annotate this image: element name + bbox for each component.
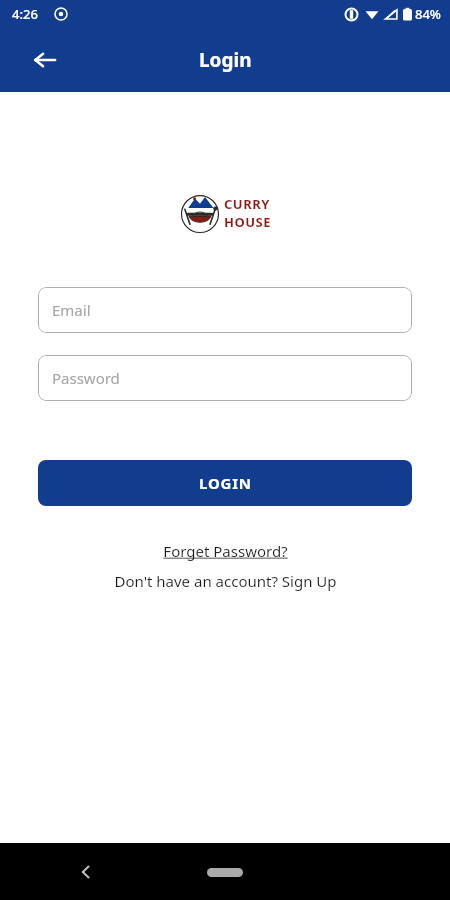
button[interactable]: Back (24, 39, 66, 81)
staticText: Don't have an account? Sign Up (114, 571, 337, 591)
staticText: Forget Password? (163, 541, 288, 561)
button[interactable]: Home (195, 859, 255, 885)
staticText: Email (52, 300, 91, 320)
staticText: Password (52, 368, 120, 388)
button[interactable]: Password (38, 355, 412, 401)
button[interactable]: Back (66, 852, 106, 892)
staticText: LOGIN (199, 473, 252, 493)
staticText: 84% (415, 5, 441, 23)
button[interactable]: Don't have an account? Sign Up (108, 569, 343, 593)
staticText: Login (199, 47, 252, 73)
staticText: CURRY (224, 195, 270, 213)
button[interactable]: Email (38, 287, 412, 333)
staticText: 4:26 (12, 5, 38, 23)
staticText: HOUSE (224, 213, 271, 229)
button[interactable]: LOGIN (38, 460, 412, 506)
button[interactable]: Forget Password? (157, 539, 294, 563)
